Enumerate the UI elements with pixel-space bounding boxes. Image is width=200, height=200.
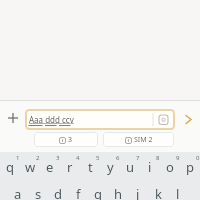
staticText: j <box>136 185 140 200</box>
staticText: t <box>88 158 93 176</box>
button[interactable]: j <box>128 182 148 200</box>
staticText: Aaa ddd ccv <box>29 114 74 125</box>
button[interactable] <box>5 110 21 126</box>
button[interactable] <box>178 109 198 130</box>
button[interactable]: o <box>160 155 180 179</box>
staticText: s <box>35 185 42 200</box>
button[interactable]: 3 <box>34 132 98 147</box>
button[interactable]: q <box>0 155 20 179</box>
button[interactable]: a <box>8 182 28 200</box>
staticText: a <box>14 185 22 200</box>
staticText: 4 <box>76 154 80 162</box>
staticText: 8 <box>156 154 160 162</box>
staticText: 3 <box>68 135 73 145</box>
staticText: f <box>76 185 81 200</box>
staticText: 5 <box>96 154 100 162</box>
staticText: 2 <box>36 154 40 162</box>
staticText: i <box>148 158 152 176</box>
staticText: 3 <box>56 154 60 162</box>
staticText: o <box>166 158 174 176</box>
staticText: l <box>176 185 180 200</box>
button[interactable]: i <box>140 155 160 179</box>
staticText: p <box>186 158 194 176</box>
button[interactable]: f <box>68 182 88 200</box>
button[interactable]: h <box>108 182 128 200</box>
button[interactable]: Aaa ddd ccv <box>25 109 175 130</box>
staticText: r <box>67 158 73 176</box>
staticText: k <box>155 185 162 200</box>
staticText: 7 <box>136 154 140 162</box>
staticText: g <box>94 185 102 200</box>
staticText: w <box>25 158 36 176</box>
button[interactable]: e <box>40 155 60 179</box>
staticText: e <box>46 158 54 176</box>
staticText: 1 <box>16 154 20 162</box>
button[interactable]: SIM 2 <box>103 132 174 147</box>
staticText: 6 <box>116 154 120 162</box>
button[interactable]: u <box>120 155 140 179</box>
staticText: 9 <box>176 154 180 162</box>
button[interactable]: s <box>28 182 48 200</box>
button[interactable]: p <box>180 155 200 179</box>
button[interactable]: d <box>48 182 68 200</box>
staticText: y <box>107 158 114 176</box>
staticText: 0 <box>196 154 200 162</box>
button[interactable]: l <box>168 182 188 200</box>
button[interactable]: t <box>80 155 100 179</box>
button[interactable]: y <box>100 155 120 179</box>
button[interactable]: g <box>88 182 108 200</box>
button[interactable]: w <box>20 155 40 179</box>
staticText: q <box>6 158 14 176</box>
staticText: u <box>126 158 135 176</box>
button[interactable]: k <box>148 182 168 200</box>
staticText: h <box>114 185 123 200</box>
staticText: SIM 2 <box>134 135 153 145</box>
staticText: d <box>54 185 62 200</box>
button[interactable]: r <box>60 155 80 179</box>
